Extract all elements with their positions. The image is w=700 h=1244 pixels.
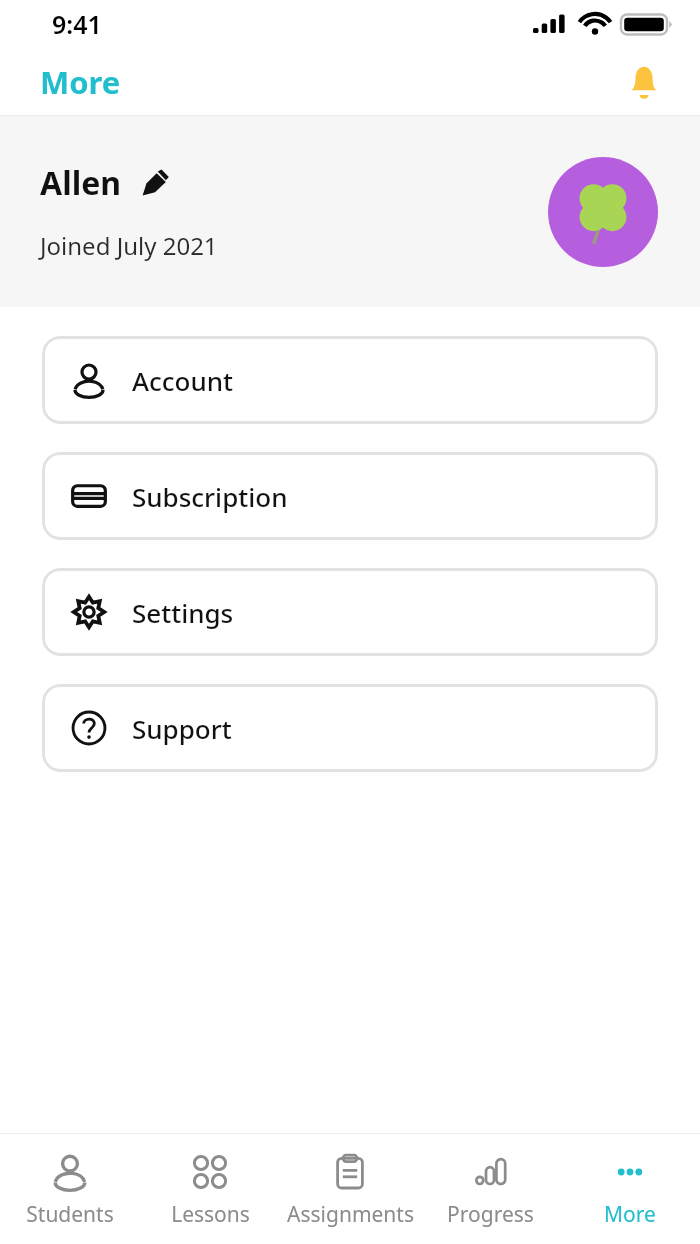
staticText: Progress	[447, 1200, 534, 1229]
staticText: Lessons	[171, 1200, 250, 1229]
button[interactable]: Profile avatar	[548, 157, 658, 267]
staticText: Subscription	[132, 479, 288, 514]
button[interactable]: Account	[42, 336, 658, 424]
staticText: More	[604, 1200, 656, 1229]
staticText: 9:41	[52, 7, 102, 41]
button[interactable]: Subscription	[42, 452, 658, 540]
staticText: Settings	[132, 595, 234, 630]
staticText: Account	[132, 363, 234, 398]
staticText: More	[40, 61, 121, 103]
button[interactable]: Assignments	[280, 1134, 420, 1244]
button[interactable]: Lessons	[140, 1134, 280, 1244]
button[interactable]: Edit name	[136, 165, 172, 201]
button[interactable]: Progress	[420, 1134, 560, 1244]
button[interactable]: Notifications	[618, 56, 670, 108]
staticText: Support	[132, 711, 232, 746]
staticText: Joined July 2021	[40, 229, 218, 262]
staticText: Students	[26, 1200, 114, 1229]
staticText: Assignments	[287, 1200, 414, 1229]
button[interactable]: Students	[0, 1134, 140, 1244]
staticText: Allen	[40, 161, 122, 205]
button[interactable]: Settings	[42, 568, 658, 656]
button[interactable]: More	[560, 1134, 700, 1244]
button[interactable]: Support	[42, 684, 658, 772]
